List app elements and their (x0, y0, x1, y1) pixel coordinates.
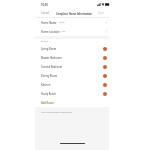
button[interactable]: Living Room (41, 44, 107, 53)
staticText: Kitchen (41, 83, 51, 87)
other: Remove Living Room (103, 47, 107, 51)
staticText: Complete Home Information (56, 12, 92, 15)
button[interactable]: Add Room (35, 101, 54, 105)
button[interactable]: Dining Room (41, 71, 107, 80)
staticText: Enter (59, 21, 65, 24)
button[interactable]: Kitchen (41, 80, 107, 89)
button[interactable]: Study Room (41, 89, 107, 98)
staticText: Dining Room (41, 74, 58, 78)
staticText: Living Room (41, 47, 57, 51)
staticText: Home Name (41, 21, 57, 25)
button[interactable]: Cancel (41, 11, 50, 15)
staticText: Second Bedroom (41, 65, 63, 69)
button[interactable]: Second Bedroom (41, 62, 107, 71)
staticText: Study Room (41, 92, 56, 96)
staticText: You can add more rooms later (41, 111, 72, 114)
button[interactable]: Home Name (41, 18, 108, 27)
button[interactable]: Home Location (41, 27, 108, 36)
staticText: Master Bedroom (41, 56, 62, 60)
other: Remove Study Room (103, 92, 107, 96)
staticText: Rooms (41, 40, 49, 43)
staticText: Set (62, 30, 66, 33)
other: Remove Kitchen (103, 83, 107, 87)
other: Remove Second Bedroom (103, 65, 107, 69)
staticText: 10:30 (41, 3, 48, 7)
other: Remove Dining Room (103, 74, 107, 78)
button[interactable]: Master Bedroom (41, 53, 107, 62)
button[interactable]: Save (98, 11, 104, 15)
other: Remove Master Bedroom (103, 56, 107, 60)
staticText: Home Location (41, 30, 60, 34)
